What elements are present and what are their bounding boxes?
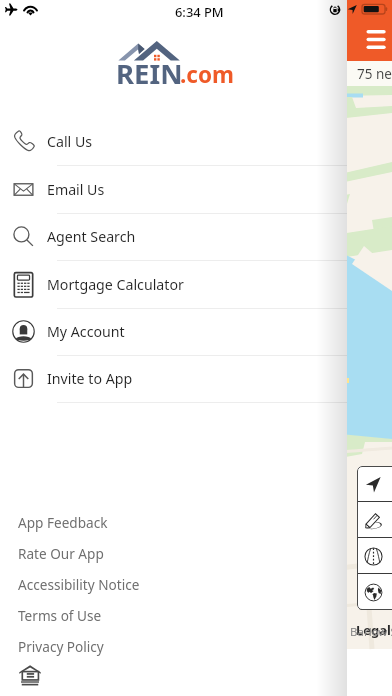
staticText: Email Us	[47, 180, 105, 199]
button[interactable]: Draw	[357, 502, 392, 538]
staticText: Rate Our App	[18, 544, 104, 563]
button[interactable]: Accessibility Notice	[0, 569, 347, 600]
staticText: Invite to App	[47, 369, 133, 388]
button[interactable]: Privacy Policy	[0, 631, 347, 662]
staticText: .com	[180, 59, 234, 90]
button[interactable]: Open navigation menu	[360, 24, 392, 54]
staticText: App Feedback	[18, 513, 108, 532]
staticText: Barlow St	[350, 624, 392, 640]
staticText: Privacy Policy	[18, 637, 104, 656]
button[interactable]: Road view	[357, 538, 392, 574]
staticText: REIN	[116, 55, 183, 92]
button[interactable]: Email Us	[0, 166, 347, 214]
button[interactable]: Call Us	[0, 118, 347, 166]
staticText: Terms of Use	[18, 606, 102, 625]
staticText: 6:34 PM	[175, 3, 224, 21]
button[interactable]: Rate Our App	[0, 538, 347, 569]
staticText: Agent Search	[47, 227, 136, 246]
button[interactable]: My location	[357, 466, 392, 502]
staticText: Call Us	[47, 132, 93, 151]
staticText: Accessibility Notice	[18, 575, 140, 594]
button[interactable]: App Feedback	[0, 507, 347, 538]
button[interactable]: Agent Search	[0, 213, 347, 261]
button[interactable]: Invite to App	[0, 355, 347, 403]
button[interactable]: Terms of Use	[0, 600, 347, 631]
button[interactable]: My Account	[0, 308, 347, 356]
button[interactable]: Mortgage Calculator	[0, 261, 347, 309]
staticText: Mortgage Calculator	[47, 275, 184, 294]
button[interactable]: Map type	[357, 574, 392, 610]
staticText: My Account	[47, 322, 125, 341]
staticText: 75 new	[357, 65, 392, 83]
staticText: Legal	[356, 621, 391, 639]
